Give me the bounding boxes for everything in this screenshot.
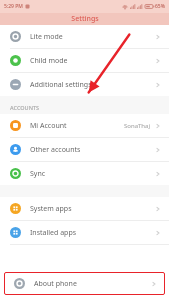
- staticText: Child mode: [30, 56, 68, 66]
- staticText: Mi Account: [30, 121, 67, 131]
- staticText: Settings: [71, 14, 99, 24]
- button[interactable]: System apps: [0, 197, 169, 220]
- button[interactable]: Installed apps: [0, 221, 169, 244]
- button[interactable]: Lite mode: [0, 25, 169, 48]
- button[interactable]: Mi Account: [0, 114, 169, 137]
- button[interactable]: Sync: [0, 162, 169, 185]
- staticText: Sync: [30, 169, 46, 179]
- button[interactable]: Other accounts: [0, 138, 169, 161]
- staticText: ACCOUNTS: [10, 104, 40, 111]
- button[interactable]: Child mode: [0, 49, 169, 72]
- staticText: 65%: [155, 3, 165, 10]
- staticText: Other accounts: [30, 145, 81, 155]
- staticText: 5:29 PM: [4, 3, 23, 10]
- button[interactable]: About phone: [4, 272, 165, 295]
- staticText: About phone: [34, 279, 77, 289]
- staticText: Additional settings: [30, 80, 92, 90]
- button[interactable]: Additional settings: [0, 73, 169, 96]
- staticText: Lite mode: [30, 32, 63, 42]
- staticText: Installed apps: [30, 228, 77, 238]
- staticText: System apps: [30, 204, 72, 214]
- staticText: SonaThaj: [124, 122, 150, 130]
